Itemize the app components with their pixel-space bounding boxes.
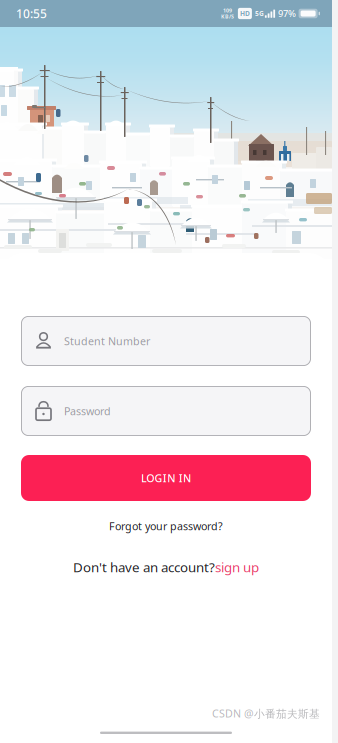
staticText: sign up — [215, 558, 259, 576]
button[interactable]: Student Number — [21, 316, 311, 366]
staticText: LOGIN IN — [141, 471, 191, 485]
staticText: Forgot your password? — [109, 519, 223, 533]
button[interactable]: Don't have an account? — [21, 557, 311, 577]
staticText: 97% — [278, 7, 296, 20]
staticText: Password — [64, 404, 111, 418]
staticText: 109 — [223, 7, 232, 14]
staticText: Don't have an account? — [73, 558, 215, 576]
button[interactable]: LOGIN IN — [21, 455, 311, 501]
staticText: 5G — [255, 9, 264, 18]
staticText: CSDN @小番茄夫斯基 — [212, 706, 320, 721]
staticText: HD — [240, 9, 250, 18]
staticText: KB/S — [221, 13, 234, 20]
button[interactable]: Password — [21, 386, 311, 436]
staticText: 10:55 — [16, 5, 47, 21]
button[interactable]: Forgot your password? — [21, 517, 311, 535]
staticText: Student Number — [64, 334, 150, 348]
